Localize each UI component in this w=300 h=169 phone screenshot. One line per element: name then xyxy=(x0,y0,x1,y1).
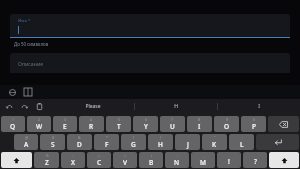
staticText: " xyxy=(214,135,216,140)
button[interactable]: = xyxy=(113,152,137,168)
button[interactable]: Имя * xyxy=(10,14,290,37)
button[interactable]: 6 xyxy=(133,116,158,132)
staticText: U xyxy=(170,122,175,131)
staticText: ) xyxy=(160,135,162,140)
button[interactable]: % xyxy=(34,152,59,168)
button[interactable]: 4 xyxy=(79,116,104,132)
button[interactable]: 8 xyxy=(187,116,212,132)
button[interactable]: Formatting xyxy=(6,86,18,98)
staticText: & xyxy=(78,135,81,140)
button[interactable]: 2 xyxy=(27,116,51,132)
staticText: R xyxy=(89,122,94,131)
button[interactable]: ) xyxy=(148,134,173,150)
staticText: 5 xyxy=(118,117,121,122)
staticText: Имя * xyxy=(18,18,31,24)
button[interactable]: / xyxy=(139,152,163,168)
staticText: / xyxy=(151,153,153,158)
button[interactable]: @ xyxy=(14,134,38,150)
staticText: B xyxy=(149,158,154,167)
staticText: ( xyxy=(133,135,135,140)
staticText: ! xyxy=(228,157,230,166)
staticText: 8 xyxy=(198,117,201,122)
staticText: N xyxy=(174,158,180,167)
staticText: H xyxy=(158,140,163,149)
button[interactable]: Описание xyxy=(10,53,290,73)
staticText: Q xyxy=(10,122,16,131)
button[interactable]: 3 xyxy=(53,116,77,132)
button[interactable]: ; xyxy=(165,152,189,168)
staticText: 9 xyxy=(226,117,229,122)
button[interactable]: Clipboard xyxy=(34,101,44,111)
button[interactable]: Shift xyxy=(1,152,32,168)
staticText: O xyxy=(224,122,230,131)
button[interactable]: : xyxy=(229,134,254,150)
staticText: 6 xyxy=(145,117,148,122)
staticText: G xyxy=(131,140,136,149)
button[interactable]: Enter xyxy=(256,134,299,150)
staticText: = xyxy=(124,153,127,158)
staticText: K xyxy=(212,140,217,149)
button[interactable]: 1 xyxy=(1,116,25,132)
staticText: ? xyxy=(254,157,257,166)
staticText: J xyxy=(187,140,189,149)
button[interactable]: ' xyxy=(175,134,200,150)
staticText: 3 xyxy=(64,117,67,122)
button[interactable]: Shift xyxy=(269,152,299,168)
staticText: T xyxy=(117,122,121,131)
staticText: 1 xyxy=(12,117,15,122)
staticText: Z xyxy=(45,158,49,167)
staticText: X xyxy=(71,158,75,167)
staticText: H xyxy=(174,103,178,110)
staticText: E xyxy=(63,122,67,131)
staticText: A xyxy=(24,140,29,149)
staticText: 2 xyxy=(38,117,41,122)
button[interactable]: Undo xyxy=(4,101,14,111)
button[interactable]: 9 xyxy=(214,116,239,132)
button[interactable]: - xyxy=(61,152,85,168)
staticText: C xyxy=(97,158,102,167)
button[interactable]: 7 xyxy=(160,116,185,132)
button[interactable]: # xyxy=(40,134,65,150)
staticText: 0 xyxy=(253,117,256,122)
button[interactable]: Insert image xyxy=(22,86,34,98)
staticText: I xyxy=(198,122,201,131)
button[interactable]: * xyxy=(94,134,119,150)
button[interactable]: Redo xyxy=(19,101,29,111)
button[interactable]: ! xyxy=(217,152,241,168)
button[interactable]: & xyxy=(67,134,92,150)
button[interactable]: Please xyxy=(52,99,134,113)
button[interactable]: 0 xyxy=(241,116,266,132)
button[interactable]: , xyxy=(191,152,215,168)
staticText: D xyxy=(77,140,82,149)
staticText: @ xyxy=(25,135,29,140)
staticText: + xyxy=(98,153,101,158)
staticText: 7 xyxy=(171,117,174,122)
button[interactable]: H xyxy=(135,99,217,113)
staticText: P xyxy=(252,122,256,131)
button[interactable]: Backspace xyxy=(268,116,299,132)
staticText: I xyxy=(258,103,260,110)
button[interactable]: + xyxy=(87,152,111,168)
staticText: M xyxy=(200,158,206,167)
button[interactable]: " xyxy=(202,134,227,150)
staticText: F xyxy=(105,140,109,149)
button[interactable]: I xyxy=(218,99,300,113)
staticText: V xyxy=(123,158,127,167)
staticText: S xyxy=(51,140,55,149)
button[interactable]: ? xyxy=(243,152,267,168)
staticText: 4 xyxy=(90,117,93,122)
staticText: , xyxy=(203,153,204,158)
staticText: - xyxy=(72,153,74,158)
button[interactable]: ( xyxy=(121,134,146,150)
staticText: ' xyxy=(188,135,189,140)
staticText: * xyxy=(106,135,108,140)
staticText: Please xyxy=(85,103,101,110)
button[interactable]: 5 xyxy=(106,116,131,132)
staticText: ; xyxy=(177,153,178,158)
staticText: W xyxy=(36,122,43,131)
staticText: Описание xyxy=(18,60,44,67)
staticText: L xyxy=(240,140,244,149)
staticText: : xyxy=(242,135,243,140)
staticText: % xyxy=(46,153,49,158)
staticText: Y xyxy=(144,122,148,131)
